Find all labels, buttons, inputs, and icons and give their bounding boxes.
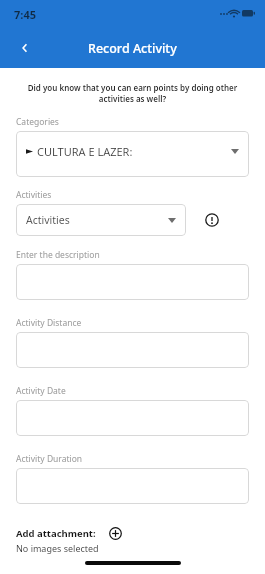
staticText: 7:45 (14, 7, 36, 22)
staticText: No images selected (16, 542, 99, 554)
staticText: Did you know that you can earn points by… (22, 82, 243, 104)
staticText: Categories (16, 116, 59, 128)
button[interactable] (16, 468, 249, 504)
other: Add attachment (106, 524, 124, 542)
staticText: Add attachment: (16, 527, 96, 540)
staticText: Activities (16, 189, 52, 201)
button[interactable]: Add attachment: (16, 524, 124, 542)
button[interactable] (16, 264, 249, 300)
staticText: Record Activity (88, 40, 177, 57)
button[interactable] (16, 332, 249, 368)
button[interactable] (16, 400, 249, 436)
staticText: Activity Date (16, 385, 66, 397)
button[interactable]: CULTURA E LAZER: (16, 131, 249, 177)
button[interactable]: Information (200, 208, 224, 232)
staticText: Activities (26, 213, 70, 227)
button[interactable]: Back (10, 33, 40, 63)
staticText: Activity Duration (16, 453, 83, 465)
staticText: CULTURA E LAZER: (37, 144, 133, 159)
staticText: Enter the description (16, 249, 100, 261)
staticText: Activity Distance (16, 317, 82, 329)
button[interactable]: Activities (16, 204, 186, 236)
